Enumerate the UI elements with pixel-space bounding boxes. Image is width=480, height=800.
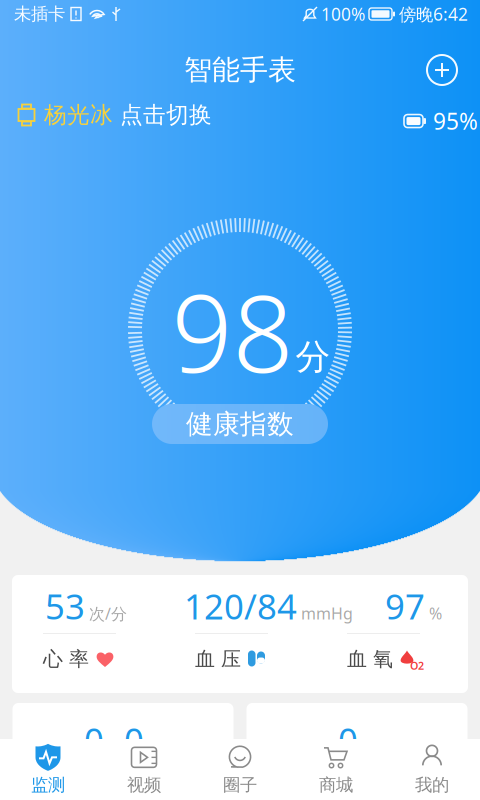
staticText: O2 bbox=[410, 658, 424, 673]
staticText: 0 bbox=[338, 717, 358, 763]
staticText: 次/分 bbox=[89, 603, 127, 624]
staticText: 杨光冰 bbox=[44, 101, 113, 129]
staticText: 商城 bbox=[319, 774, 353, 796]
button[interactable]: 杨光冰 bbox=[0, 98, 222, 132]
button[interactable]: 商城 bbox=[288, 739, 384, 800]
staticText: 傍晚6:42 bbox=[399, 2, 468, 25]
button[interactable]: 视频 bbox=[96, 739, 192, 800]
staticText: 53 bbox=[45, 583, 85, 629]
staticText: 0 bbox=[84, 717, 104, 763]
staticText: % bbox=[429, 603, 442, 624]
staticText: 视频 bbox=[127, 774, 161, 796]
staticText: 监测 bbox=[31, 774, 65, 796]
staticText: 我的 bbox=[415, 774, 449, 796]
button[interactable]: 圈子 bbox=[192, 739, 288, 800]
staticText: 100% bbox=[321, 2, 365, 25]
staticText: 分 bbox=[295, 336, 330, 378]
staticText: 120/84 bbox=[184, 583, 297, 629]
staticText: 0 bbox=[124, 717, 144, 763]
staticText: mmHg bbox=[301, 603, 353, 624]
staticText: 血 氧 bbox=[347, 647, 393, 671]
staticText: 健康指数 bbox=[186, 408, 294, 440]
staticText: 智能手表 bbox=[184, 53, 296, 87]
button[interactable]: 添加设备 bbox=[420, 48, 464, 92]
staticText: 圈子 bbox=[223, 774, 257, 796]
staticText: 97 bbox=[385, 583, 425, 629]
staticText: 98 bbox=[171, 260, 293, 402]
button[interactable]: 健康指数 bbox=[152, 404, 328, 444]
staticText: 血 压 bbox=[195, 647, 241, 671]
button[interactable]: 监测 bbox=[0, 739, 96, 800]
staticText: 心 率 bbox=[43, 647, 89, 671]
staticText: 95% bbox=[433, 106, 478, 136]
staticText: 点击切换 bbox=[120, 101, 212, 129]
button[interactable]: 我的 bbox=[384, 739, 480, 800]
staticText: 未插卡 bbox=[14, 3, 65, 25]
staticText: 分 bbox=[146, 738, 162, 758]
